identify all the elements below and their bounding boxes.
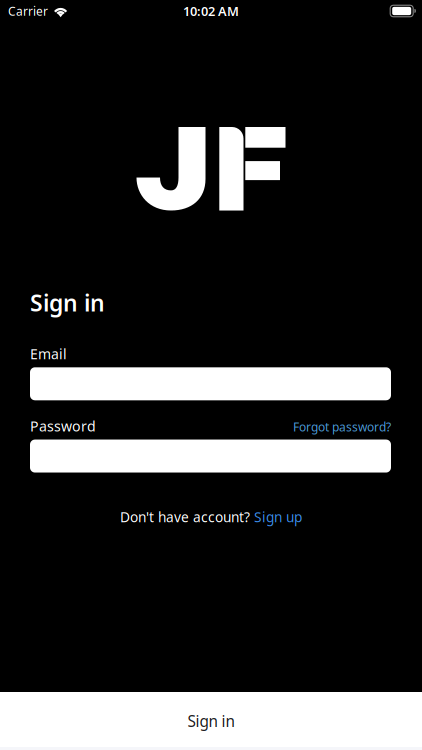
staticText: Don't have account? [120,508,250,526]
button[interactable]: Don't have account? [120,508,302,526]
staticText: Sign up [254,508,302,526]
staticText: Forgot password? [293,419,391,435]
staticText: Email [30,344,67,363]
staticText: Sign in [187,711,234,731]
staticText: 10:02 AM [183,2,239,20]
staticText: Carrier [8,3,48,19]
staticText: Password [30,416,96,435]
button[interactable]: Forgot password? [293,419,391,435]
button[interactable]: Sign in [0,692,422,747]
staticText: Sign in [30,287,105,318]
